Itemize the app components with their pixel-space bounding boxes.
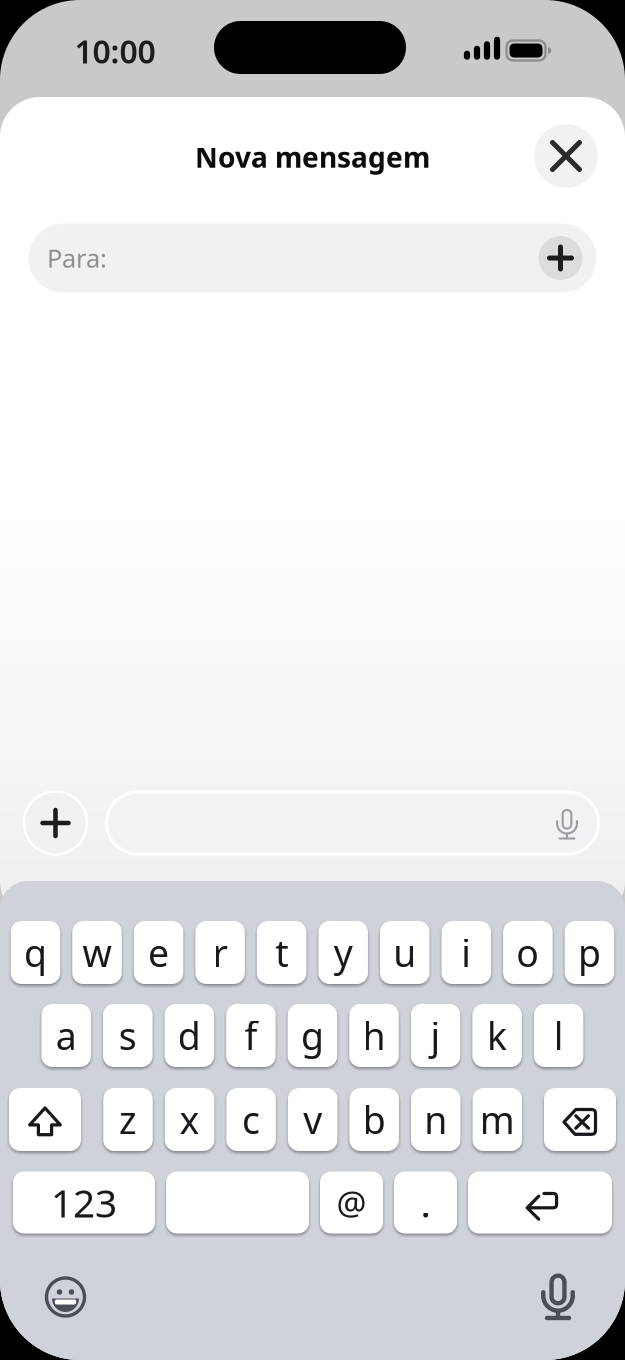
button[interactable]: Fechar — [533, 123, 599, 189]
button[interactable]: r — [195, 921, 245, 984]
button[interactable]: Ditado — [532, 1269, 584, 1321]
staticText: 123 — [51, 1177, 117, 1228]
button[interactable]: c — [226, 1088, 276, 1151]
button[interactable]: p — [565, 921, 614, 984]
button[interactable]: i — [441, 921, 491, 984]
staticText: o — [516, 928, 539, 977]
staticText: @ — [336, 1180, 366, 1225]
staticText: h — [362, 1011, 385, 1060]
button[interactable]: Mensagem — [106, 792, 598, 854]
button[interactable]: Emoji — [42, 1273, 89, 1320]
staticText: a — [56, 1011, 77, 1060]
staticText: r — [213, 928, 228, 977]
staticText: x — [180, 1095, 200, 1144]
button[interactable]: Adicionar contato — [538, 236, 582, 280]
button[interactable]: @ — [320, 1171, 383, 1233]
staticText: s — [119, 1011, 137, 1060]
button[interactable]: h — [349, 1004, 399, 1067]
button[interactable]: u — [380, 921, 429, 984]
button[interactable]: Para: — [27, 222, 598, 294]
button[interactable]: Ditar — [543, 799, 591, 847]
staticText: q — [24, 928, 47, 977]
button[interactable]: x — [165, 1088, 214, 1151]
staticText: y — [334, 928, 353, 977]
staticText: v — [303, 1095, 322, 1144]
staticText: b — [363, 1095, 386, 1144]
staticText: g — [301, 1011, 324, 1060]
staticText: Para: — [47, 241, 107, 275]
staticText: j — [430, 1011, 440, 1060]
button[interactable]: w — [72, 921, 122, 984]
button[interactable]: d — [165, 1004, 214, 1067]
button[interactable]: m — [472, 1088, 522, 1151]
button[interactable]: 123 — [13, 1171, 155, 1233]
button[interactable]: Retorno — [468, 1171, 612, 1233]
staticText: w — [82, 928, 111, 977]
staticText: m — [480, 1095, 515, 1144]
button[interactable]: a — [41, 1004, 91, 1067]
button[interactable]: Apagar — [544, 1088, 616, 1151]
button[interactable]: f — [226, 1004, 276, 1067]
button[interactable]: v — [288, 1088, 337, 1151]
button[interactable]: s — [103, 1004, 152, 1067]
staticText: u — [393, 928, 416, 977]
button[interactable]: Apps — [24, 791, 87, 854]
staticText: p — [578, 928, 601, 977]
button[interactable]: b — [349, 1088, 399, 1151]
button[interactable]: Espaço — [166, 1171, 309, 1233]
staticText: t — [275, 928, 288, 977]
staticText: c — [242, 1095, 260, 1144]
button[interactable]: o — [503, 921, 553, 984]
button[interactable]: z — [103, 1088, 153, 1151]
staticText: l — [554, 1011, 564, 1060]
button[interactable]: t — [257, 921, 306, 984]
button[interactable]: Shift — [9, 1088, 81, 1151]
button[interactable]: . — [394, 1171, 457, 1233]
staticText: f — [244, 1011, 257, 1060]
staticText: e — [148, 928, 169, 977]
staticText: Nova mensagem — [195, 138, 430, 176]
staticText: n — [424, 1095, 447, 1144]
button[interactable]: j — [411, 1004, 460, 1067]
staticText: 10:00 — [74, 30, 155, 72]
button[interactable]: q — [11, 921, 60, 984]
staticText: z — [119, 1095, 137, 1144]
staticText: i — [461, 928, 471, 977]
staticText: d — [178, 1011, 201, 1060]
staticText: . — [420, 1177, 430, 1228]
button[interactable]: k — [472, 1004, 522, 1067]
button[interactable]: l — [534, 1004, 583, 1067]
button[interactable]: y — [318, 921, 368, 984]
button[interactable]: g — [288, 1004, 337, 1067]
button[interactable]: n — [411, 1088, 460, 1151]
button[interactable]: e — [134, 921, 183, 984]
staticText: k — [487, 1011, 507, 1060]
